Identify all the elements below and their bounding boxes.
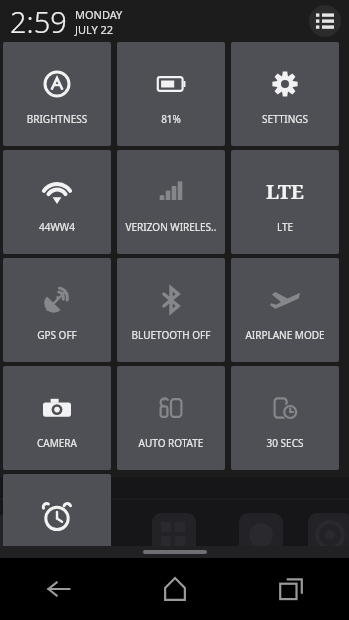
button[interactable]: Alarm SAT 10:00 AM [3, 474, 111, 550]
staticText: MONDAY [75, 7, 123, 22]
button[interactable]: Quick settings menu [309, 5, 341, 37]
button[interactable]: Brightness auto [3, 42, 111, 146]
staticText: AUTO ROTATE [119, 436, 223, 450]
button[interactable]: Settings [231, 42, 339, 146]
button[interactable]: Home [117, 558, 233, 620]
staticText: 2:59 [10, 2, 67, 41]
staticText: BLUETOOTH OFF [119, 328, 223, 342]
staticText: CAMERA [5, 436, 109, 450]
staticText: BRIGHTNESS [5, 112, 109, 126]
button[interactable]: Back [0, 558, 117, 620]
staticText: LTE [266, 178, 304, 205]
button[interactable]: Camera [3, 366, 111, 470]
button[interactable]: Bluetooth off [117, 258, 225, 362]
staticText: LTE [233, 220, 337, 234]
staticText: VERIZON WIRELES.. [119, 220, 223, 234]
button[interactable]: Airplane mode [231, 258, 339, 362]
staticText: SAT 10:00 AM [3, 544, 111, 550]
staticText: GPS OFF [5, 328, 109, 342]
staticText: 44WW4 [5, 220, 109, 234]
button[interactable]: Recent apps [233, 558, 349, 620]
staticText: SETTINGS [233, 112, 337, 126]
button[interactable]: Wi-Fi 44WW4 [3, 150, 111, 254]
button[interactable]: Screen timeout 30 seconds [231, 366, 339, 470]
button[interactable]: GPS off [3, 258, 111, 362]
staticText: JULY 22 [75, 22, 114, 37]
button[interactable]: Battery 81 percent [117, 42, 225, 146]
button[interactable]: LTE data [231, 150, 339, 254]
staticText: 81% [119, 112, 223, 126]
staticText: AIRPLANE MODE [233, 328, 337, 342]
button[interactable]: Mobile signal Verizon [117, 150, 225, 254]
button[interactable]: Auto rotate [117, 366, 225, 470]
staticText: 30 SECS [233, 436, 337, 450]
